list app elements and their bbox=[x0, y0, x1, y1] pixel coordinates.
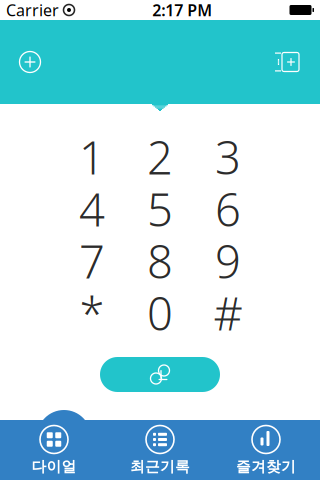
staticText: # bbox=[213, 283, 242, 343]
staticText: 5 bbox=[147, 179, 173, 239]
staticText: 즐겨찾기 bbox=[236, 457, 296, 475]
button[interactable]: 0 bbox=[126, 287, 194, 339]
staticText: 다이얼 bbox=[31, 457, 76, 475]
staticText: 1 bbox=[79, 127, 105, 187]
staticText: 최근기록 bbox=[130, 457, 190, 475]
staticText: Carrier bbox=[6, 0, 59, 21]
button[interactable]: 3 bbox=[194, 131, 262, 183]
staticText: 2:17 PM bbox=[152, 0, 212, 21]
button[interactable]: # bbox=[194, 287, 262, 339]
button[interactable]: Delete bbox=[260, 33, 314, 91]
button[interactable]: 즐겨찾기 bbox=[213, 420, 319, 480]
button[interactable]: 2 bbox=[126, 131, 194, 183]
button[interactable]: 9 bbox=[194, 235, 262, 287]
staticText: 0 bbox=[147, 283, 173, 343]
staticText: 6 bbox=[215, 179, 241, 239]
button[interactable]: 6 bbox=[194, 183, 262, 235]
staticText: 2 bbox=[147, 127, 173, 187]
button[interactable]: 4 bbox=[58, 183, 126, 235]
staticText: 9 bbox=[215, 231, 241, 291]
staticText: 8 bbox=[147, 231, 173, 291]
button[interactable]: Add contact bbox=[6, 33, 54, 91]
staticText: 3 bbox=[215, 127, 241, 187]
button[interactable]: 최근기록 bbox=[107, 420, 213, 480]
button[interactable]: 1 bbox=[58, 131, 126, 183]
button[interactable]: * bbox=[58, 287, 126, 339]
button[interactable]: 8 bbox=[126, 235, 194, 287]
staticText: * bbox=[79, 283, 104, 343]
button[interactable]: 5 bbox=[126, 183, 194, 235]
button[interactable]: 7 bbox=[58, 235, 126, 287]
staticText: 7 bbox=[79, 231, 105, 291]
button[interactable]: Call bbox=[100, 357, 220, 392]
staticText: 4 bbox=[79, 179, 105, 239]
button[interactable]: 다이얼 bbox=[1, 420, 107, 480]
